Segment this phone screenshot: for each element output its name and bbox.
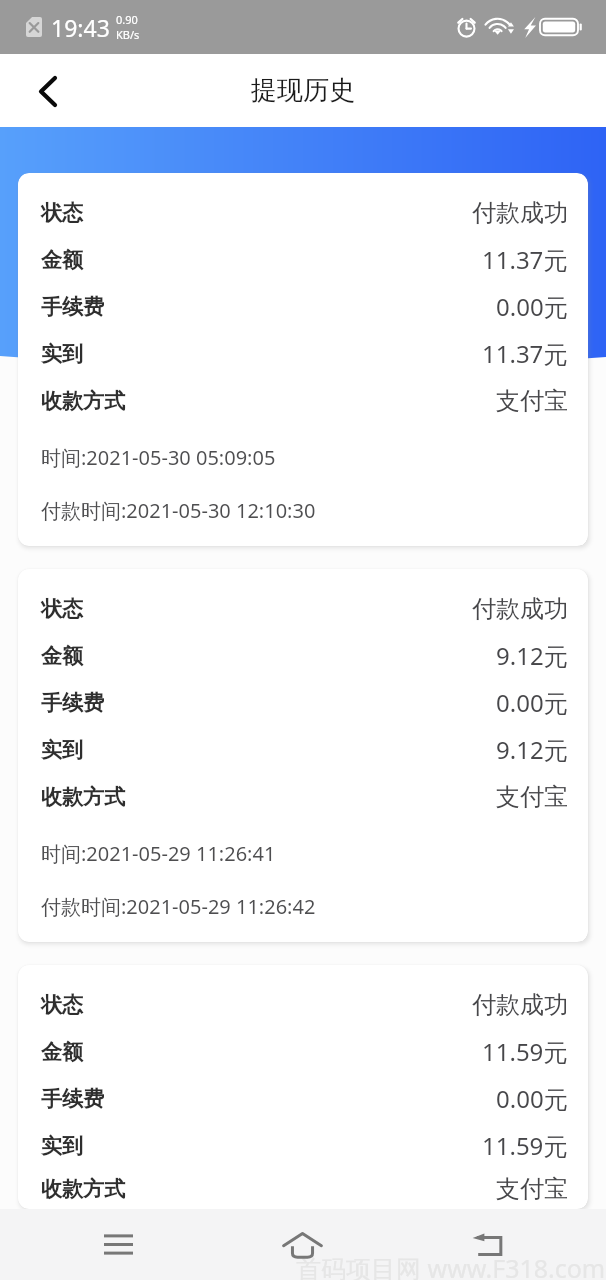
staticText: 实到 bbox=[41, 341, 83, 367]
staticText: 0.00元 bbox=[496, 686, 568, 719]
staticText: 状态 bbox=[41, 992, 83, 1018]
staticText: 支付宝 bbox=[496, 782, 568, 812]
staticText: 9.12元 bbox=[496, 639, 568, 672]
staticText: 手续费 bbox=[41, 294, 104, 320]
staticText: 实到 bbox=[41, 737, 83, 763]
button[interactable]: 状态 bbox=[18, 569, 588, 942]
staticText: 支付宝 bbox=[496, 386, 568, 416]
button[interactable]: Back bbox=[24, 67, 72, 115]
staticText: 实到 bbox=[41, 1133, 83, 1159]
button[interactable]: Menu bbox=[26, 1209, 210, 1280]
staticText: 9.12元 bbox=[496, 733, 568, 766]
staticText: 状态 bbox=[41, 200, 83, 226]
staticText: 0.00元 bbox=[496, 290, 568, 323]
staticText: 0.90 bbox=[116, 12, 138, 27]
staticText: 手续费 bbox=[41, 690, 104, 716]
button[interactable]: 状态 bbox=[18, 173, 588, 546]
staticText: 金额 bbox=[41, 247, 83, 273]
staticText: 19:43 bbox=[51, 12, 110, 43]
staticText: 手续费 bbox=[41, 1086, 104, 1112]
staticText: 金额 bbox=[41, 1039, 83, 1065]
staticText: 状态 bbox=[41, 596, 83, 622]
staticText: 11.37元 bbox=[482, 337, 568, 370]
staticText: 提现历史 bbox=[251, 74, 355, 107]
staticText: 首码项目网 www.F318.com bbox=[296, 1251, 606, 1280]
staticText: 11.59元 bbox=[482, 1129, 568, 1162]
staticText: 付款成功 bbox=[472, 594, 568, 624]
button[interactable]: Back bbox=[395, 1209, 580, 1280]
staticText: 付款成功 bbox=[472, 198, 568, 228]
staticText: 11.37元 bbox=[482, 243, 568, 276]
staticText: 支付宝 bbox=[496, 1174, 568, 1204]
staticText: 付款时间:2021-05-29 11:26:42 bbox=[41, 893, 316, 920]
button[interactable]: 状态 bbox=[18, 965, 588, 1209]
button[interactable]: Home bbox=[210, 1209, 395, 1280]
staticText: 收款方式 bbox=[41, 388, 125, 414]
staticText: 收款方式 bbox=[41, 784, 125, 810]
staticText: 金额 bbox=[41, 643, 83, 669]
staticText: 11.59元 bbox=[482, 1035, 568, 1068]
staticText: 付款成功 bbox=[472, 990, 568, 1020]
staticText: 时间:2021-05-30 05:09:05 bbox=[41, 444, 276, 471]
staticText: 时间:2021-05-29 11:26:41 bbox=[41, 840, 276, 867]
staticText: 付款时间:2021-05-30 12:10:30 bbox=[41, 497, 316, 524]
staticText: 收款方式 bbox=[41, 1176, 125, 1202]
staticText: KB/s bbox=[116, 27, 140, 42]
staticText: 0.00元 bbox=[496, 1082, 568, 1115]
